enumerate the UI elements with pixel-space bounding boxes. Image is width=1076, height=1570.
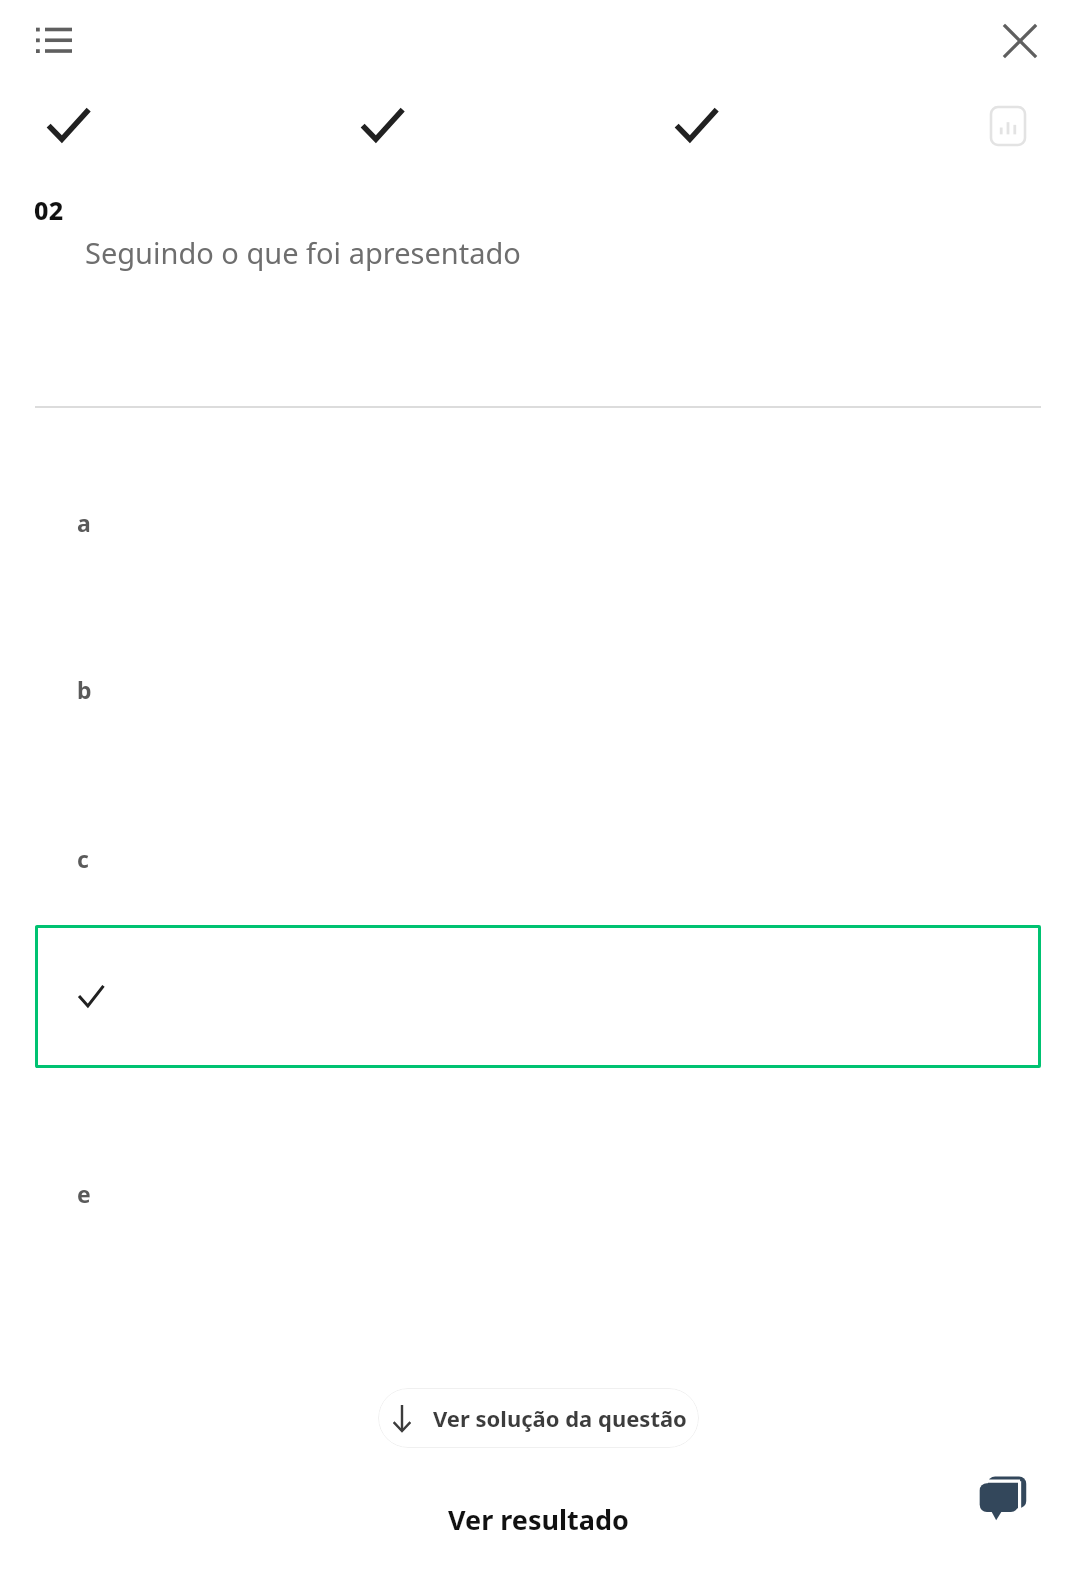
button[interactable]: Estatísticas	[978, 98, 1038, 154]
button[interactable]	[342, 94, 422, 156]
staticText: 02	[34, 193, 64, 227]
staticText: Seguindo o que foi apresentado	[85, 233, 521, 272]
button[interactable]	[35, 925, 1041, 1068]
staticText: e	[77, 1178, 91, 1209]
staticText: Ver resultado	[448, 1501, 629, 1538]
button[interactable]	[28, 94, 108, 156]
button[interactable]: Ver resultado	[0, 1490, 1076, 1548]
button[interactable]: e	[42, 1163, 1048, 1223]
button[interactable]: Fechar	[988, 10, 1052, 72]
staticText: a	[77, 507, 91, 538]
staticText: b	[77, 674, 92, 705]
staticText: c	[77, 843, 89, 874]
button[interactable]	[656, 94, 736, 156]
button[interactable]: a	[42, 492, 1048, 552]
button[interactable]: Abrir chat de suporte	[960, 1452, 1056, 1548]
button[interactable]: Índice de questões	[20, 12, 88, 68]
button[interactable]: Ver solução da questão	[378, 1388, 699, 1448]
staticText: Ver solução da questão	[433, 1403, 687, 1433]
button[interactable]: c	[42, 828, 1048, 888]
button[interactable]: b	[42, 659, 1048, 719]
